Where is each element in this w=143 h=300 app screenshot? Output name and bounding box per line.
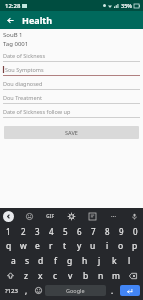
button[interactable]: 4: [44, 224, 58, 238]
staticText: p: [132, 240, 138, 252]
staticText: GIF: [46, 213, 55, 220]
button[interactable]: y: [72, 238, 86, 253]
button[interactable]: q: [1, 238, 16, 253]
button[interactable]: Settings: [65, 210, 77, 222]
button[interactable]: w: [16, 238, 30, 253]
staticText: l: [128, 255, 131, 267]
button[interactable]: Dou diagnosed: [3, 80, 140, 94]
button[interactable]: b: [78, 268, 93, 283]
staticText: d: [38, 255, 44, 267]
button[interactable]: m: [108, 268, 123, 283]
button[interactable]: Period: [106, 283, 119, 298]
staticText: .: [111, 285, 114, 296]
staticText: m: [112, 270, 120, 282]
staticText: a: [11, 255, 16, 267]
button[interactable]: s: [20, 253, 34, 268]
button[interactable]: Stickers: [23, 210, 35, 222]
button[interactable]: Expand toolbar: [3, 211, 14, 222]
staticText: u: [90, 240, 96, 252]
staticText: j: [98, 255, 101, 267]
staticText: q: [6, 240, 12, 252]
button[interactable]: Sou Symptoms: [3, 66, 140, 80]
staticText: s: [25, 255, 30, 267]
staticText: g: [67, 255, 73, 267]
staticText: z: [24, 270, 28, 282]
staticText: t: [63, 240, 67, 252]
button[interactable]: 0: [128, 224, 142, 238]
button[interactable]: Dou Treatment: [3, 94, 140, 108]
button[interactable]: Translate: [86, 210, 98, 222]
staticText: Dou Treatment: [3, 94, 42, 101]
staticText: f: [54, 255, 57, 267]
staticText: Date of Sickness follow up: [3, 108, 71, 115]
staticText: i: [106, 240, 109, 252]
button[interactable]: a: [6, 253, 20, 268]
button[interactable]: Comma: [21, 283, 32, 298]
button[interactable]: l: [122, 253, 137, 268]
button[interactable]: More options: [107, 210, 119, 222]
button[interactable]: Space: [45, 285, 106, 296]
button[interactable]: r: [44, 238, 58, 253]
button[interactable]: p: [128, 238, 142, 253]
staticText: 2: [21, 226, 26, 237]
button[interactable]: Back: [2, 12, 18, 28]
button[interactable]: x: [33, 268, 48, 283]
button[interactable]: t: [58, 238, 72, 253]
button[interactable]: c: [48, 268, 63, 283]
staticText: n: [98, 270, 104, 282]
staticText: 5: [63, 226, 68, 237]
button[interactable]: g: [62, 253, 77, 268]
button[interactable]: Date of Sickness follow up: [3, 108, 140, 122]
staticText: 4: [49, 226, 54, 237]
staticText: SouB 1: [3, 31, 23, 39]
staticText: 35%: [121, 2, 132, 9]
staticText: y: [77, 240, 82, 252]
button[interactable]: Shift: [1, 268, 19, 283]
staticText: k: [112, 255, 117, 267]
staticText: Sou Symptoms: [5, 66, 44, 73]
button[interactable]: 7: [86, 224, 100, 238]
staticText: 8: [105, 226, 110, 237]
button[interactable]: o: [114, 238, 128, 253]
button[interactable]: e: [30, 238, 44, 253]
button[interactable]: Date of Sickness: [3, 52, 140, 66]
button[interactable]: SAVE: [4, 126, 139, 139]
staticText: 1: [6, 226, 11, 237]
button[interactable]: f: [48, 253, 62, 268]
button[interactable]: 5: [58, 224, 72, 238]
button[interactable]: Backspace: [123, 268, 142, 283]
button[interactable]: v: [63, 268, 78, 283]
button[interactable]: z: [19, 268, 33, 283]
staticText: 9: [119, 226, 124, 237]
staticText: v: [68, 270, 73, 282]
staticText: r: [49, 240, 53, 252]
button[interactable]: 3: [30, 224, 44, 238]
button[interactable]: 6: [72, 224, 86, 238]
button[interactable]: n: [93, 268, 108, 283]
staticText: Date of Sickness: [3, 52, 46, 59]
button[interactable]: 9: [114, 224, 128, 238]
button[interactable]: ?123: [2, 283, 21, 298]
staticText: Dou diagnosed: [3, 80, 43, 87]
button[interactable]: 2: [16, 224, 30, 238]
button[interactable]: Voice input: [128, 210, 140, 222]
staticText: ,: [25, 285, 28, 296]
button[interactable]: k: [107, 253, 122, 268]
staticText: o: [118, 240, 124, 252]
button[interactable]: 1: [1, 224, 16, 238]
staticText: 12:28: [5, 2, 21, 10]
button[interactable]: i: [100, 238, 114, 253]
staticText: SAVE: [65, 129, 78, 136]
staticText: c: [53, 270, 58, 282]
button[interactable]: d: [34, 253, 48, 268]
button[interactable]: u: [86, 238, 100, 253]
staticText: b: [83, 270, 89, 282]
button[interactable]: GIF: [44, 210, 56, 222]
staticText: 3: [35, 226, 40, 237]
button[interactable]: j: [92, 253, 107, 268]
staticText: 0: [133, 226, 138, 237]
button[interactable]: h: [77, 253, 92, 268]
button[interactable]: Emoji: [32, 283, 45, 298]
button[interactable]: 8: [100, 224, 114, 238]
button[interactable]: Enter: [120, 285, 140, 296]
